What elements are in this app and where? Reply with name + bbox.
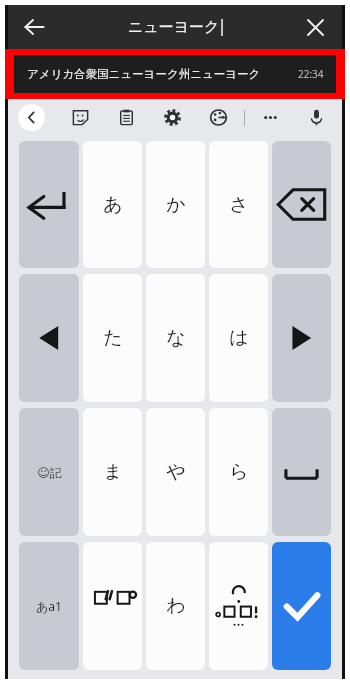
button[interactable]: は — [209, 274, 268, 402]
button[interactable]: ARR_L — [19, 274, 79, 402]
staticText: や — [166, 460, 186, 484]
staticText: な — [166, 326, 186, 350]
staticText: ま — [103, 460, 123, 484]
button[interactable]: DAKUTEN — [83, 542, 142, 670]
button[interactable]: ARR_R — [272, 274, 331, 402]
button[interactable]: あ — [83, 141, 142, 268]
button[interactable]: Stickers — [67, 104, 94, 131]
staticText: は — [229, 326, 249, 350]
button[interactable]: な — [146, 274, 205, 402]
staticText: さ — [229, 193, 249, 217]
staticText: あ — [103, 193, 123, 217]
button[interactable]: た — [83, 274, 142, 402]
button[interactable]: Clipboard — [113, 104, 140, 131]
staticText: あa1 — [36, 598, 62, 614]
button[interactable]: BKSP — [272, 141, 331, 268]
button[interactable]: ☺記 — [19, 408, 79, 536]
button[interactable]: Back — [16, 9, 52, 45]
button[interactable]: CHECK — [272, 542, 331, 670]
button[interactable]: Voice input — [303, 104, 330, 131]
button[interactable]: あa1 — [19, 542, 79, 670]
staticText: ら — [229, 460, 249, 484]
staticText: ☺記 — [37, 465, 62, 480]
button[interactable]: Clear text — [297, 9, 333, 45]
button[interactable]: ま — [83, 408, 142, 536]
staticText: わ — [166, 594, 186, 618]
button[interactable]: Settings — [159, 104, 186, 131]
button[interactable]: か — [146, 141, 205, 268]
button[interactable]: ら — [209, 408, 268, 536]
button[interactable]: More options — [257, 104, 284, 131]
button[interactable]: や — [146, 408, 205, 536]
button[interactable]: Themes — [205, 104, 232, 131]
staticText: 22:34 — [298, 67, 324, 81]
button[interactable]: SPACE — [272, 408, 331, 536]
button[interactable]: さ — [209, 141, 268, 268]
button[interactable]: PUNCT — [209, 542, 268, 670]
staticText: ニューヨーク — [128, 18, 220, 37]
button[interactable]: Collapse toolbar — [18, 104, 45, 131]
staticText: た — [103, 326, 123, 350]
button[interactable]: アメリカ合衆国ニューヨーク州ニューヨーク — [14, 55, 336, 93]
button[interactable]: わ — [146, 542, 205, 670]
button[interactable]: ENTER_L — [19, 141, 79, 268]
staticText: か — [166, 193, 186, 217]
staticText: アメリカ合衆国ニューヨーク州ニューヨーク — [27, 67, 261, 81]
